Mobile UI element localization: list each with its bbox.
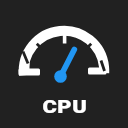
staticText: CPU	[42, 97, 89, 118]
button[interactable]: CPU	[0, 0, 128, 128]
